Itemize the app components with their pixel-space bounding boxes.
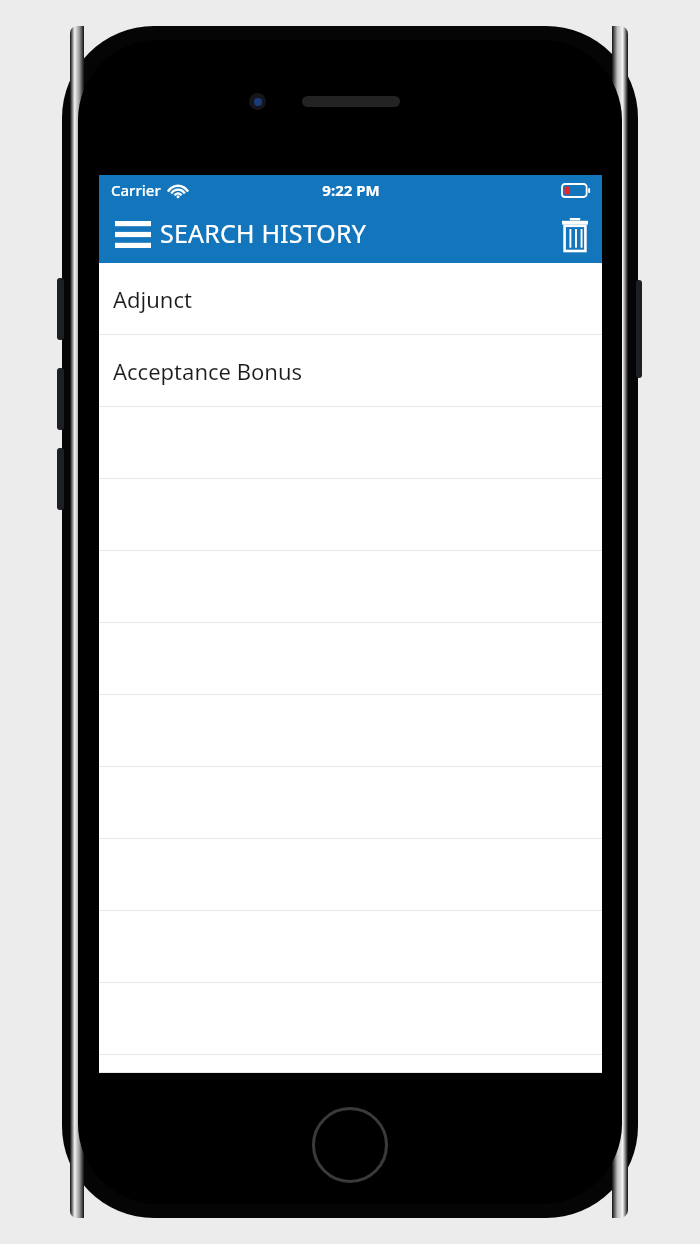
button[interactable]: Adjunct	[99, 263, 602, 335]
staticText: SEARCH HISTORY	[160, 216, 367, 250]
button[interactable]: Acceptance Bonus	[99, 335, 602, 407]
staticText: 9:22 PM	[322, 180, 380, 200]
button[interactable]	[99, 1055, 602, 1073]
staticText: Carrier	[111, 180, 161, 200]
staticText: Adjunct	[113, 284, 192, 314]
button[interactable]: Open navigation menu	[99, 209, 157, 260]
staticText: Acceptance Bonus	[113, 356, 303, 386]
button[interactable]: Clear search history	[548, 208, 602, 261]
